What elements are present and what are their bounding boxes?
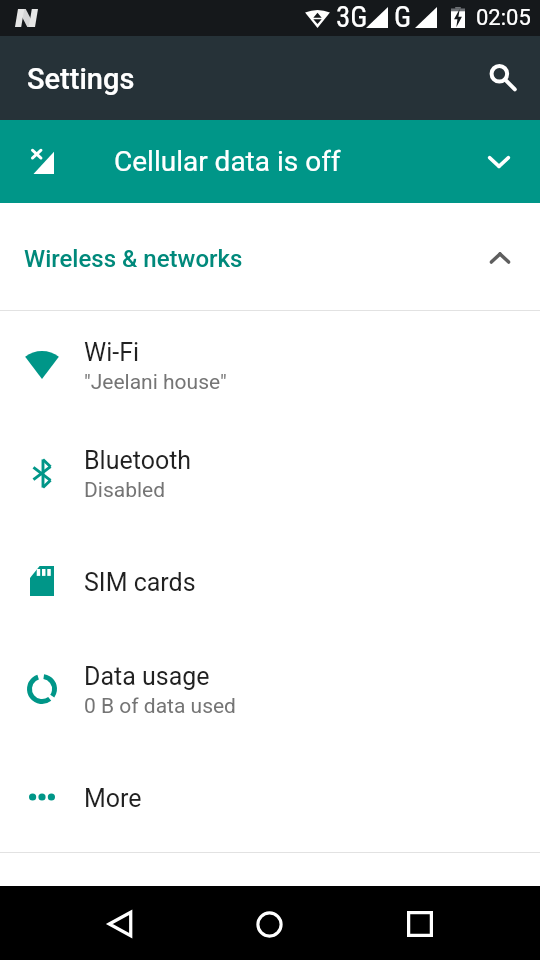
button[interactable]: Data usage [0, 635, 540, 743]
staticText: "Jeelani house" [84, 370, 227, 395]
button[interactable]: Cellular data is off [0, 120, 540, 203]
staticText: 02:05 [476, 5, 531, 31]
staticText: Bluetooth [84, 446, 192, 475]
staticText: Settings [27, 62, 135, 96]
staticText: SIM cards [84, 568, 196, 597]
staticText: Data usage [84, 662, 210, 691]
button[interactable]: SIM cards [0, 527, 540, 635]
button[interactable]: More [0, 743, 540, 851]
staticText: Cellular data is off [114, 145, 341, 178]
button[interactable]: Wireless & networks [0, 203, 540, 310]
button[interactable]: Back [60, 886, 180, 960]
staticText: Wi-Fi [84, 338, 140, 367]
button[interactable]: Home [209, 886, 329, 960]
button[interactable]: Wi-Fi [0, 311, 540, 419]
staticText: G [394, 0, 412, 34]
staticText: Wireless & networks [24, 245, 243, 273]
button[interactable]: Recents [360, 886, 480, 960]
staticText: 3G [336, 0, 368, 34]
button[interactable]: Search [480, 52, 532, 104]
staticText: 0 B of data used [84, 694, 236, 719]
button[interactable]: Bluetooth [0, 419, 540, 527]
staticText: More [84, 784, 142, 813]
staticText: Disabled [84, 478, 166, 503]
